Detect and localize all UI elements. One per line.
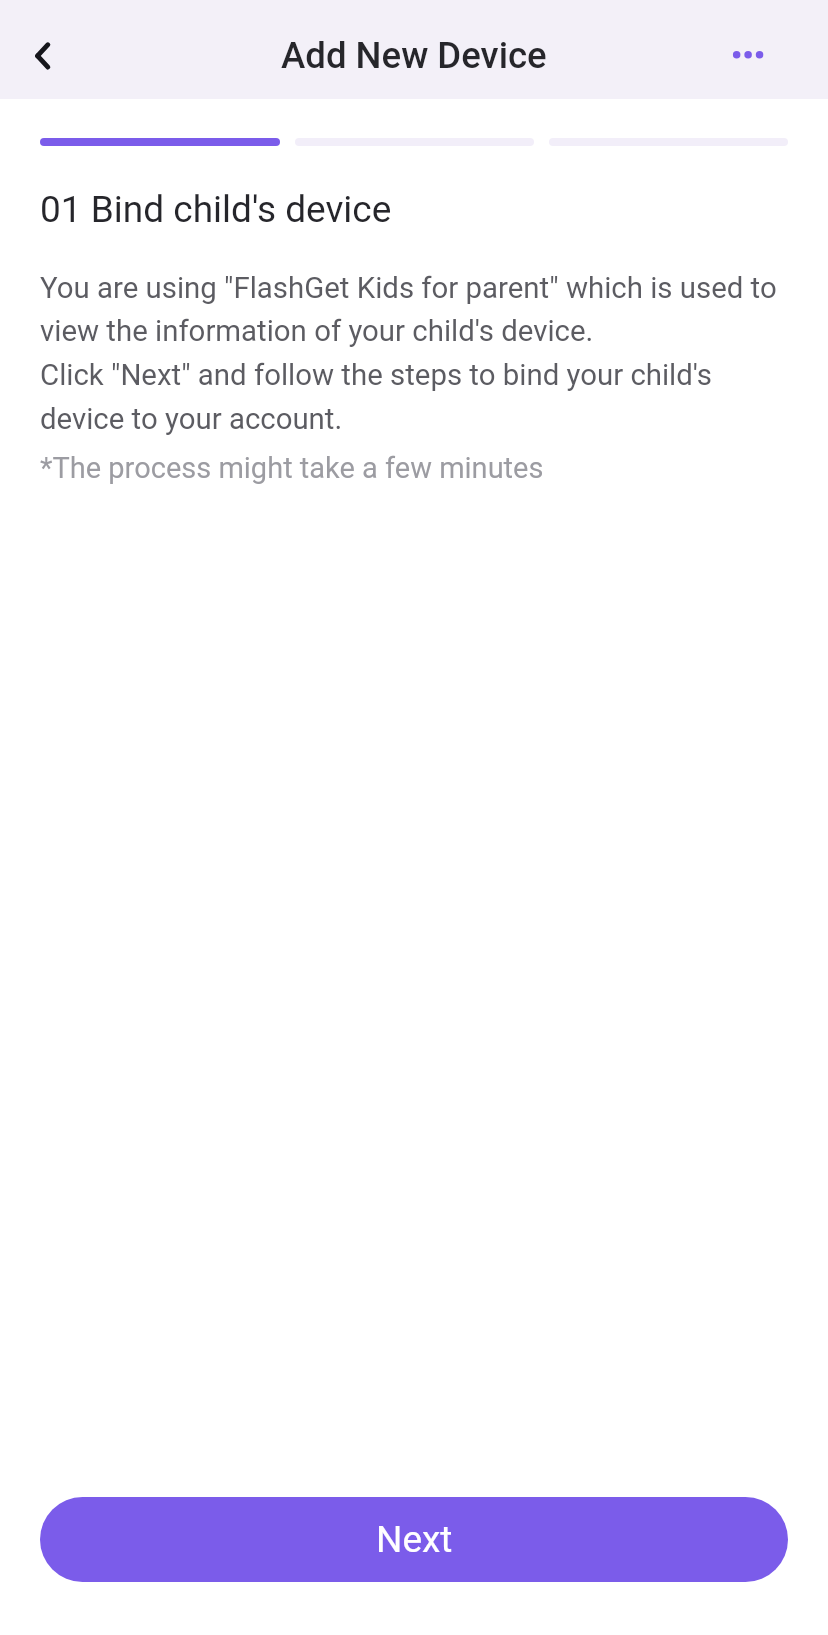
- button[interactable]: Next: [40, 1497, 788, 1582]
- staticText: Next: [376, 1518, 453, 1561]
- button[interactable]: Back: [10, 24, 74, 88]
- staticText: *The process might take a few minutes: [40, 451, 544, 485]
- staticText: Add New Device: [281, 34, 547, 77]
- staticText: You are using "FlashGet Kids for parent"…: [40, 271, 792, 437]
- button[interactable]: More options: [716, 23, 780, 87]
- staticText: 01 Bind child's device: [40, 188, 392, 231]
